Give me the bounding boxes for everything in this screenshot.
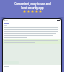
staticText: Convenient, easy to use and best securit… bbox=[14, 2, 51, 9]
staticText: 9:41 bbox=[4, 19, 8, 22]
button[interactable] bbox=[4, 27, 58, 38]
button[interactable] bbox=[4, 22, 60, 26]
button[interactable] bbox=[4, 40, 58, 43]
